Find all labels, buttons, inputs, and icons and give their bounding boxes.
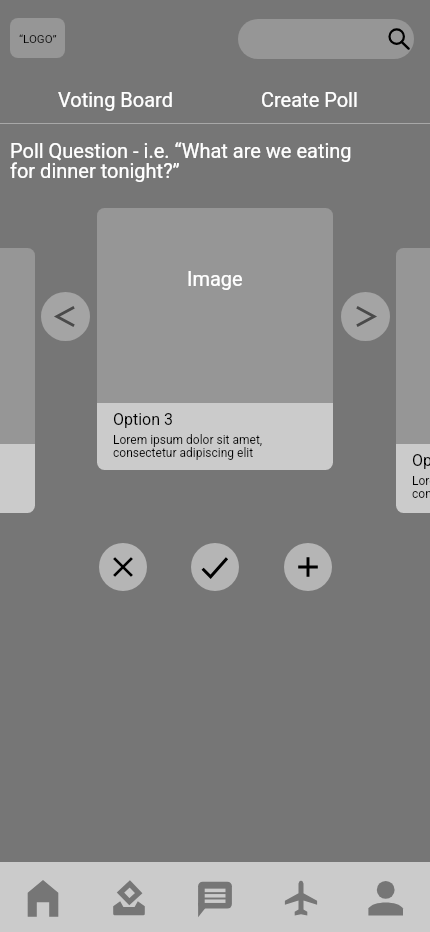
button[interactable]: Add option (284, 543, 332, 591)
button[interactable]: Voting Board (40, 82, 190, 116)
button[interactable]: Reject (99, 543, 147, 591)
staticText: Option 3 (113, 410, 174, 429)
button[interactable]: Option 3 (396, 248, 430, 513)
button[interactable]: Image (97, 208, 333, 470)
staticText: Create Poll (261, 88, 358, 111)
button[interactable]: Profile (344, 862, 430, 932)
button[interactable]: “LOGO” (10, 18, 65, 58)
button[interactable]: Vote (86, 862, 172, 932)
button[interactable]: Search (238, 19, 414, 59)
button[interactable]: Flights (258, 862, 344, 932)
button[interactable]: Next option (341, 292, 390, 341)
button[interactable]: Accept (191, 543, 239, 591)
staticText: Voting Board (58, 88, 173, 111)
staticText: “LOGO” (19, 32, 57, 45)
button[interactable]: Previous option (41, 292, 90, 341)
button[interactable]: Home (0, 862, 86, 932)
button[interactable]: Create Poll (240, 82, 378, 116)
button[interactable]: Option 3 (0, 248, 35, 513)
staticText: Lorem ipsum dolor sit amet, consectetur … (113, 433, 273, 460)
button[interactable]: Messages (172, 862, 258, 932)
staticText: Option 3 (412, 451, 430, 470)
staticText: Image (187, 267, 243, 290)
staticText: Poll Question - i.e. “What are we eating… (10, 139, 370, 183)
staticText: Lorem ipsum dolor sit amet, consectetur … (412, 474, 430, 501)
